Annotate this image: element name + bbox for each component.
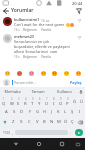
button[interactable]: 1 — [0, 96, 8, 107]
button[interactable]: Back — [4, 138, 27, 150]
button[interactable]: Emoji — [3, 69, 11, 77]
button[interactable]: Emoji — [74, 69, 82, 77]
staticText: M — [57, 119, 61, 125]
button[interactable]: Voice input — [77, 87, 85, 96]
staticText: ulkesi Sonuclarinizi cam — [14, 49, 58, 54]
staticText: 3 — [18, 97, 20, 101]
button[interactable]: Keyboard layout — [73, 138, 83, 150]
button[interactable]: Home — [27, 138, 50, 150]
button[interactable]: Z — [9, 117, 17, 127]
button[interactable]: Tamam — [25, 87, 51, 96]
button[interactable]: Ş — [69, 107, 76, 117]
button[interactable]: Ç — [69, 117, 76, 127]
staticText: B — [43, 119, 46, 125]
staticText: Sonuclarinizi en çok — [14, 39, 50, 44]
button[interactable]: mehmet23 — [0, 32, 85, 59]
button[interactable]: Emoji — [62, 69, 70, 77]
button[interactable]: 0 — [64, 96, 71, 107]
staticText: J — [51, 109, 53, 115]
button[interactable]: 6 — [36, 96, 43, 107]
staticText: N — [50, 119, 54, 125]
button[interactable]: Send — [75, 129, 83, 136]
button[interactable]: K — [55, 107, 62, 117]
staticText: . — [70, 130, 72, 135]
staticText: U — [45, 101, 49, 107]
button[interactable]: 2 — [8, 96, 15, 107]
button[interactable]: . — [68, 128, 73, 137]
button[interactable]: 7 — [43, 96, 50, 107]
button[interactable]: Beğenme — [23, 28, 38, 32]
staticText: Yorumlar — [11, 7, 34, 14]
staticText: F — [29, 109, 32, 115]
button[interactable]: Emoji — [15, 69, 23, 77]
button[interactable]: Like — [76, 34, 83, 41]
button[interactable]: F — [26, 107, 34, 117]
staticText: 1 — [3, 97, 5, 101]
staticText: 20:44 — [72, 1, 83, 6]
button[interactable]: V — [33, 117, 41, 127]
staticText: D — [20, 109, 24, 115]
button[interactable]: X — [17, 117, 25, 127]
button[interactable]: I — [76, 107, 83, 117]
button[interactable]: Ğ — [71, 96, 78, 107]
button[interactable]: Like — [76, 17, 83, 24]
button[interactable]: M — [55, 117, 62, 127]
staticText: E — [17, 101, 20, 107]
staticText: T — [31, 101, 34, 107]
button[interactable]: 4 — [22, 96, 29, 107]
button[interactable]: N — [48, 117, 55, 127]
button[interactable]: 9 — [57, 96, 64, 107]
button[interactable]: Emoji — [50, 69, 58, 77]
staticText: Ö — [64, 119, 68, 125]
button[interactable]: G — [34, 107, 41, 117]
button[interactable]: Back — [0, 6, 11, 15]
button[interactable]: 8 — [50, 96, 57, 107]
staticText: mehmet23 — [14, 34, 35, 39]
staticText: Merhaba — [4, 89, 21, 94]
button[interactable]: Yanıtla — [41, 28, 51, 32]
button[interactable]: A — [2, 107, 10, 117]
button[interactable]: S — [10, 107, 18, 117]
staticText: 4 — [25, 97, 27, 101]
staticText: P — [66, 101, 69, 107]
button[interactable]: Recents — [50, 138, 73, 150]
staticText: Q — [2, 101, 6, 107]
button[interactable]: B — [41, 117, 48, 127]
staticText: Ç — [71, 119, 74, 125]
button[interactable]: 3 — [15, 96, 22, 107]
button[interactable]: 5 — [29, 96, 36, 107]
staticText: L — [64, 109, 67, 115]
button[interactable]: Emoji — [27, 69, 35, 77]
staticText: Can't wait for the next game — [14, 22, 65, 27]
button[interactable]: Beğenme — [23, 55, 38, 59]
staticText: K — [57, 109, 60, 115]
button[interactable]: , — [11, 128, 15, 137]
button[interactable]: Backspace — [76, 117, 85, 127]
button[interactable]: Filter — [73, 6, 85, 15]
button[interactable]: C — [25, 117, 33, 127]
button[interactable]: D — [18, 107, 26, 117]
button[interactable]: Ü — [78, 96, 85, 107]
button[interactable]: ?123 — [1, 128, 11, 137]
button[interactable]: Paylaş — [70, 80, 82, 85]
button[interactable]: Ö — [62, 117, 69, 127]
button[interactable]: kullanicisimi1 — [0, 15, 85, 32]
staticText: , — [12, 130, 14, 135]
staticText: 6 — [39, 97, 41, 101]
staticText: O — [59, 101, 63, 107]
button[interactable]: H — [41, 107, 48, 117]
button[interactable]: Yorum ekle... — [0, 77, 85, 87]
button[interactable]: Merhaba — [0, 87, 25, 96]
button[interactable]: Shift — [0, 117, 9, 127]
staticText: 7 — [46, 97, 48, 101]
staticText: A — [5, 109, 8, 115]
button[interactable]: J — [48, 107, 55, 117]
staticText: Ğ — [73, 99, 77, 105]
button[interactable]: Yanıtla — [41, 55, 51, 59]
staticText: buşardalar, ellerde ve paylaşani — [14, 44, 70, 49]
button[interactable]: Emoji — [39, 69, 47, 77]
button[interactable]: Kullanıcı — [51, 87, 77, 96]
staticText: I — [53, 101, 55, 107]
button[interactable]: L — [62, 107, 69, 117]
